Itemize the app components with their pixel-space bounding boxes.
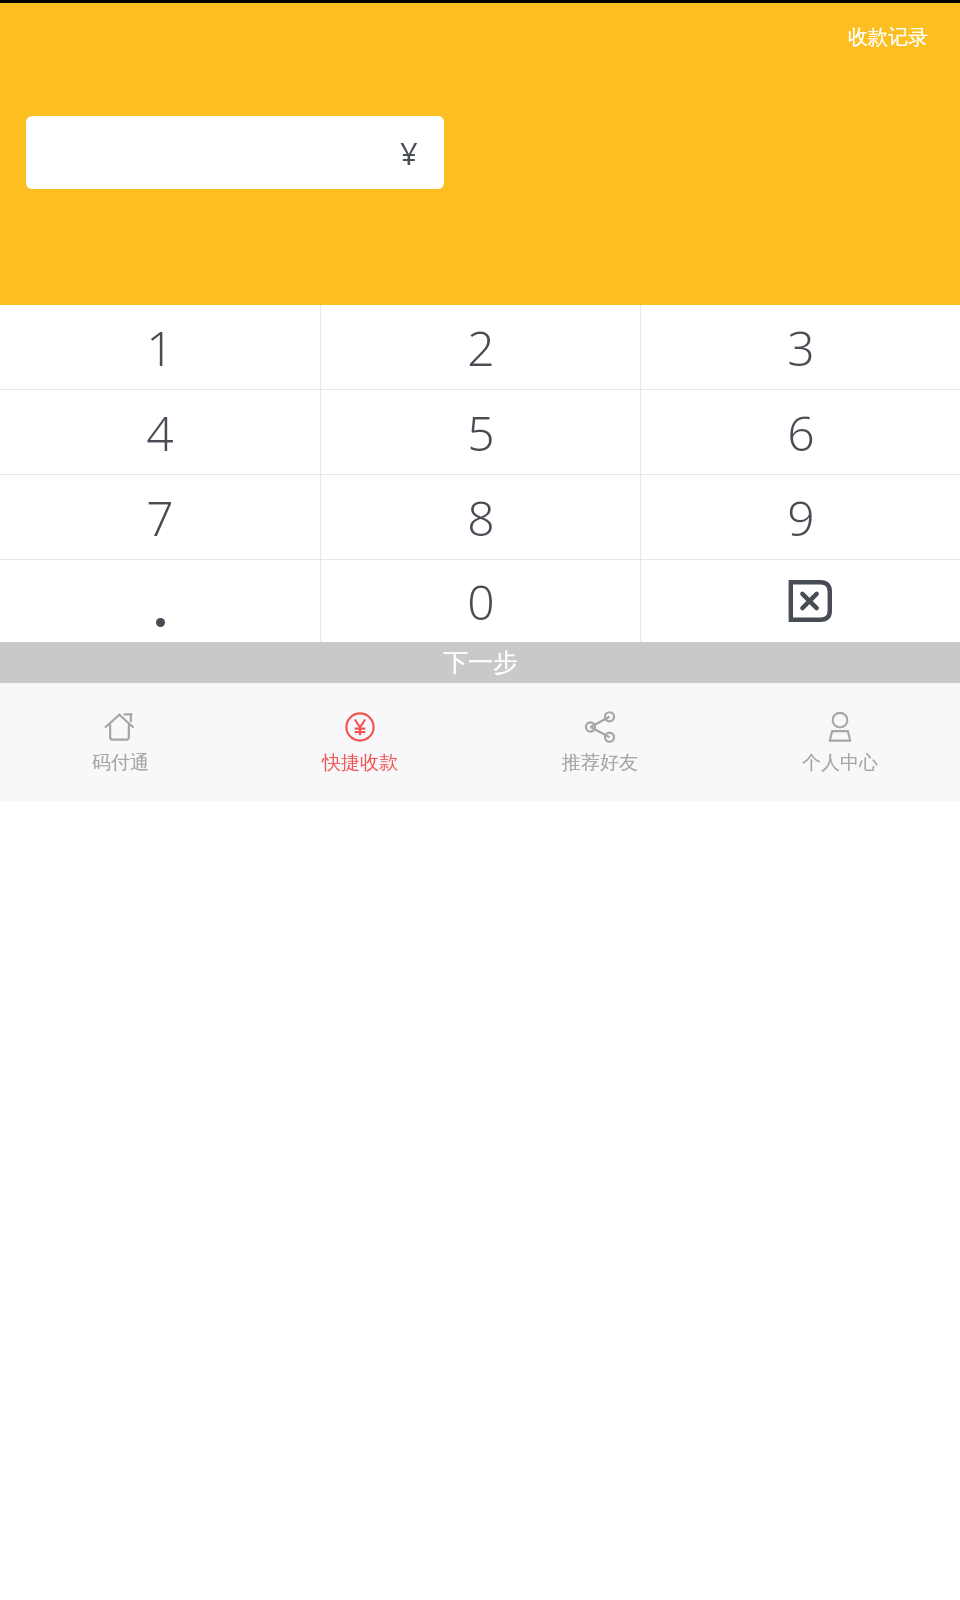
- button[interactable]: 9: [641, 475, 960, 559]
- staticText: 6: [787, 400, 815, 465]
- staticText: 4: [146, 400, 174, 465]
- staticText: 3: [787, 315, 815, 380]
- staticText: 下一步: [443, 647, 518, 678]
- button[interactable]: 收款记录: [848, 25, 928, 50]
- button[interactable]: 下一步: [0, 642, 960, 683]
- staticText: 0: [467, 569, 495, 634]
- button[interactable]: 快捷收款: [240, 683, 480, 801]
- staticText: 2: [467, 315, 495, 380]
- staticText: 5: [467, 400, 495, 465]
- staticText: 快捷收款: [322, 751, 398, 775]
- button[interactable]: 2: [321, 305, 640, 389]
- button[interactable]: 7: [0, 475, 320, 559]
- staticText: ¥: [400, 132, 418, 174]
- staticText: 码付通: [92, 751, 149, 775]
- button[interactable]: 1: [0, 305, 320, 389]
- staticText: 7: [146, 485, 174, 550]
- staticText: 8: [467, 485, 495, 550]
- staticText: 个人中心: [802, 751, 878, 775]
- button[interactable]: 推荐好友: [480, 683, 720, 801]
- button[interactable]: 3: [641, 305, 960, 389]
- button[interactable]: 5: [321, 390, 640, 474]
- button[interactable]: 个人中心: [720, 683, 960, 801]
- button[interactable]: 4: [0, 390, 320, 474]
- button[interactable]: 0: [321, 560, 640, 642]
- staticText: 9: [787, 485, 815, 550]
- staticText: 推荐好友: [562, 751, 638, 775]
- button[interactable]: 8: [321, 475, 640, 559]
- button[interactable]: 6: [641, 390, 960, 474]
- button[interactable]: ¥: [26, 116, 444, 189]
- button[interactable]: Backspace: [641, 560, 960, 642]
- button[interactable]: 码付通: [0, 683, 240, 801]
- button[interactable]: [0, 560, 320, 642]
- staticText: 1: [146, 315, 174, 380]
